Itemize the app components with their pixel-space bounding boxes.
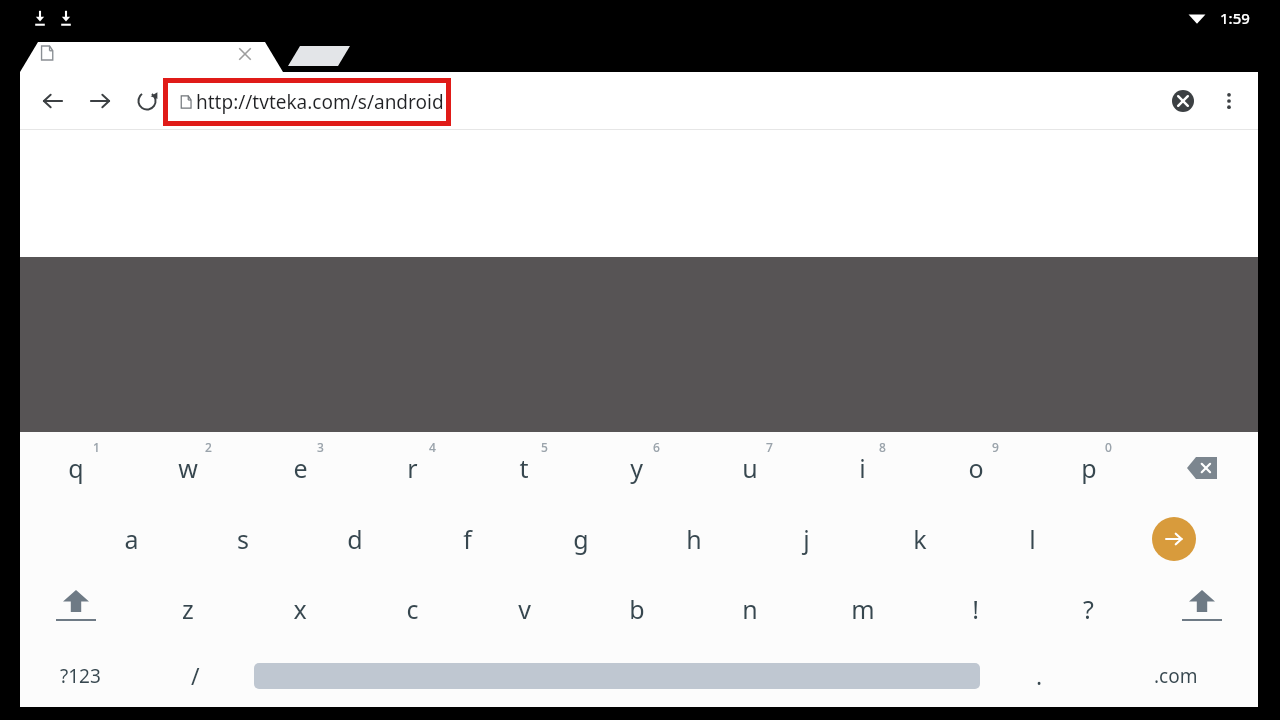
button[interactable]: v [468,574,580,644]
button[interactable]: http://tvteka.com/s/android [163,78,451,126]
staticText: k [913,522,927,556]
button[interactable]: g [524,504,637,574]
button[interactable]: Shift [1145,574,1258,644]
button[interactable]: c [356,574,468,644]
button[interactable]: ? [1032,574,1145,644]
staticText: 9 [992,439,999,455]
button[interactable]: Shift [20,574,132,644]
staticText: ? [1083,592,1094,626]
staticText: 2 [205,439,212,455]
staticText: z [182,592,194,626]
staticText: . [1036,660,1043,691]
staticText: n [742,592,758,626]
staticText: v [518,592,531,626]
button[interactable]: d [299,504,411,574]
button[interactable]: m [806,574,919,644]
button[interactable]: b [580,574,693,644]
staticText: e [293,451,308,485]
button[interactable]: More options [1208,80,1250,122]
button[interactable]: Close tab [236,45,254,63]
button[interactable]: 5 [468,432,580,504]
button[interactable]: l [976,504,1089,574]
staticText: l [1029,522,1036,556]
staticText: 5 [541,439,548,455]
button[interactable]: x [244,574,356,644]
staticText: s [237,522,249,556]
staticText: r [407,451,418,485]
button[interactable]: h [637,504,750,574]
button[interactable]: ?123 [20,644,140,707]
staticText: t [519,451,529,485]
staticText: 4 [429,439,436,455]
button[interactable]: Forward [80,81,120,121]
staticText: y [630,451,643,485]
button[interactable]: 2 [132,432,244,504]
staticText: b [629,592,645,626]
staticText: h [686,522,702,556]
button[interactable]: ! [919,574,1032,644]
button[interactable]: k [863,504,976,574]
button[interactable]: 7 [693,432,806,504]
staticText: 7 [766,439,773,455]
button[interactable]: n [693,574,806,644]
button[interactable]: . [984,644,1094,707]
button[interactable]: 0 [1032,432,1145,504]
button[interactable]: / [140,644,250,707]
staticText: 1 [93,439,100,455]
button[interactable]: 1 [20,432,132,504]
button[interactable]: 6 [580,432,693,504]
button[interactable]: Backspace [1145,432,1258,504]
staticText: g [573,522,589,556]
staticText: 3 [317,439,324,455]
staticText: j [803,522,810,556]
staticText: 1:59 [1220,8,1250,28]
staticText: o [968,451,984,485]
staticText: c [406,592,419,626]
staticText: w [178,451,198,485]
button[interactable]: Go [1152,517,1196,561]
staticText: ?123 [60,663,101,689]
staticText: 8 [879,439,886,455]
staticText: 6 [653,439,660,455]
button[interactable]: a [75,504,187,574]
staticText: http://tvteka.com/s/android [196,89,444,115]
button[interactable]: z [132,574,244,644]
button[interactable]: j [750,504,863,574]
staticText: d [347,522,363,556]
staticText: x [293,592,307,626]
button[interactable]: s [187,504,299,574]
button[interactable]: 8 [806,432,919,504]
staticText: 0 [1105,439,1112,455]
button[interactable]: .com [1094,644,1258,707]
button[interactable]: 9 [919,432,1032,504]
button[interactable]: 4 [356,432,468,504]
button[interactable]: f [411,504,524,574]
staticText: m [851,592,875,626]
staticText: .com [1154,663,1198,689]
staticText: a [124,522,139,556]
staticText: f [463,522,472,556]
staticText: ! [972,592,979,626]
staticText: u [742,451,758,485]
staticText: q [68,451,84,485]
staticText: i [859,451,866,485]
button[interactable]: Reload [127,81,167,121]
staticText: p [1081,451,1097,485]
button[interactable]: Back [33,81,73,121]
button[interactable]: Stop loading [1162,80,1204,122]
button[interactable]: 3 [244,432,356,504]
staticText: / [191,660,200,691]
